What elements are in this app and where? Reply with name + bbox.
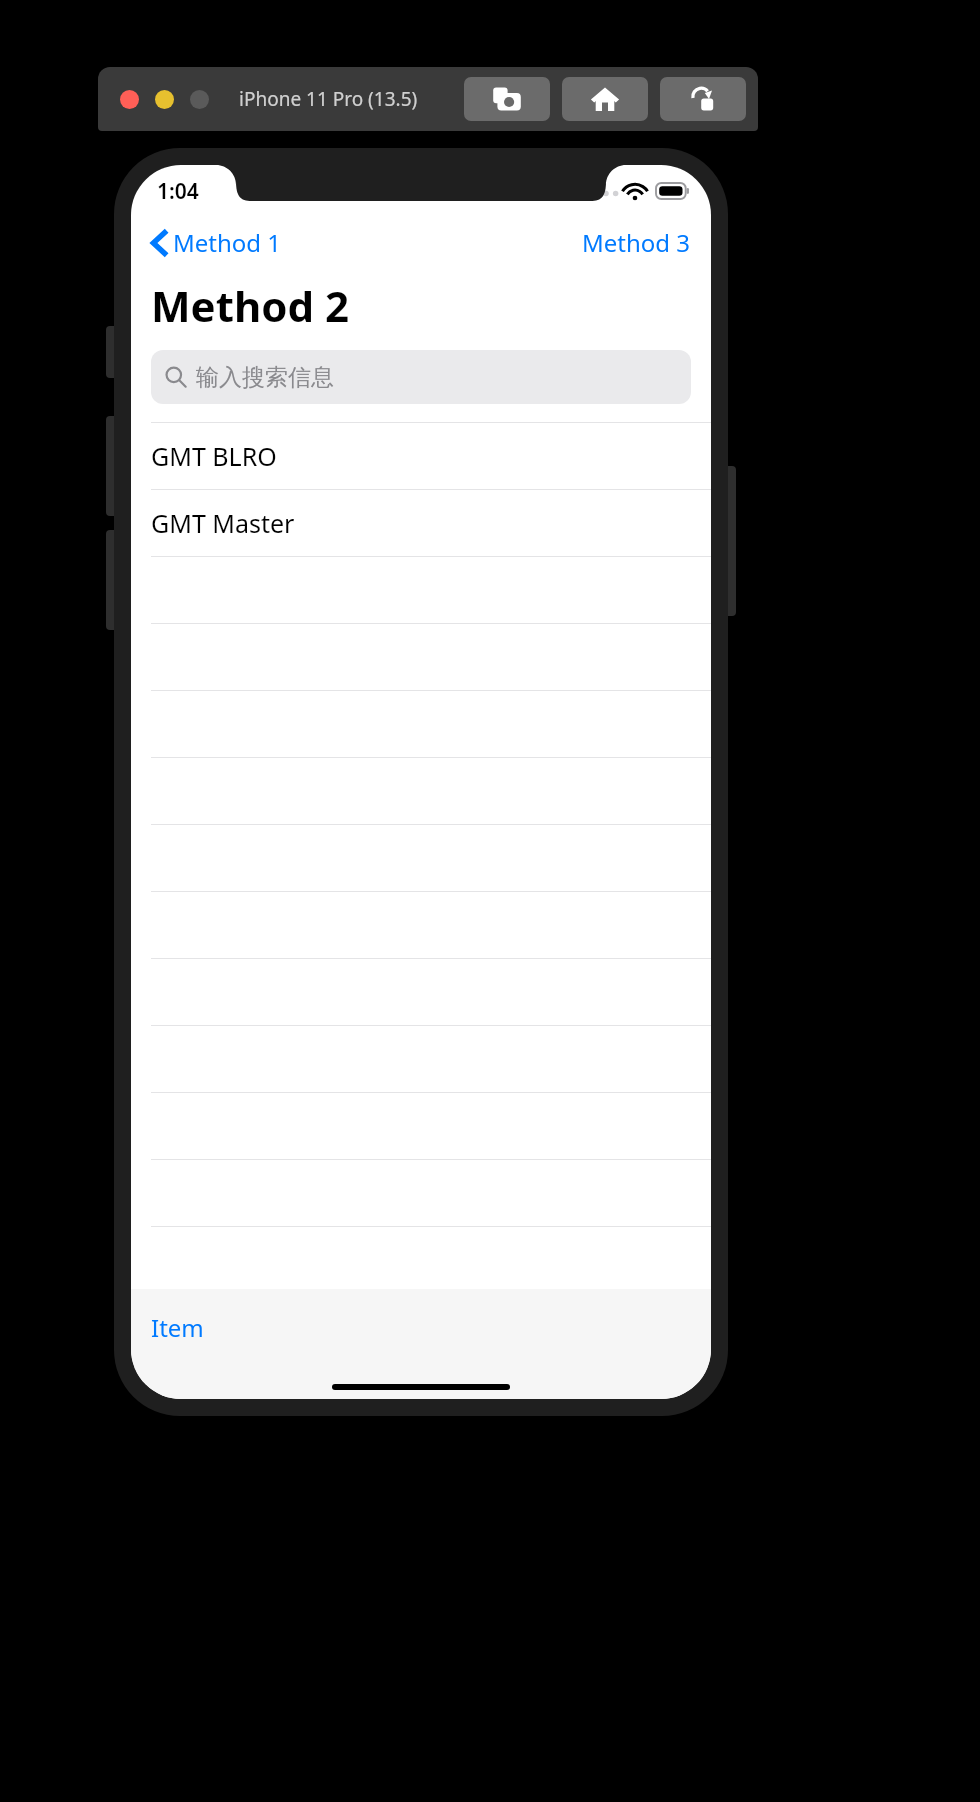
button[interactable]: Minimize (155, 90, 174, 109)
staticText: GMT BLRO (151, 439, 277, 473)
staticText: 1:04 (157, 177, 199, 206)
button[interactable]: GMT BLRO (131, 423, 711, 489)
button[interactable]: Home (562, 77, 648, 121)
button[interactable]: 输入搜索信息 (151, 350, 691, 404)
staticText: 输入搜索信息 (196, 363, 334, 392)
button[interactable]: Rotate (660, 77, 746, 121)
button[interactable]: Method 1 (145, 222, 288, 263)
staticText: iPhone 11 Pro (13.5) (239, 86, 418, 112)
staticText: Method 3 (582, 226, 691, 259)
button[interactable]: Screenshot (464, 77, 550, 121)
button[interactable]: Zoom (190, 90, 209, 109)
staticText: Item (151, 1311, 204, 1344)
staticText: GMT Master (151, 506, 295, 540)
button[interactable]: Close (120, 90, 139, 109)
staticText: Method 1 (173, 226, 282, 259)
button[interactable]: GMT Master (131, 490, 711, 556)
button[interactable]: Method 3 (576, 222, 697, 263)
staticText: Method 2 (151, 277, 349, 334)
button[interactable]: Item (145, 1307, 210, 1348)
